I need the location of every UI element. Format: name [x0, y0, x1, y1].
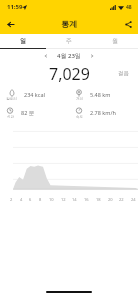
staticText: 걸음 [118, 70, 129, 77]
staticText: 통계 [61, 19, 77, 29]
staticText: 18 [96, 197, 101, 202]
staticText: 234 kcal [24, 91, 45, 98]
staticText: 칼로리 [6, 97, 17, 101]
button[interactable]: Share [118, 14, 138, 34]
staticText: 48 [126, 4, 132, 11]
staticText: 82 분 [21, 109, 35, 117]
staticText: 시간 [7, 115, 14, 119]
staticText: 6 [29, 197, 32, 202]
staticText: 24 [131, 197, 136, 202]
staticText: 16 [84, 197, 89, 202]
staticText: 14 [72, 197, 77, 202]
staticText: 12 [61, 197, 66, 202]
button[interactable]: 시간 [0, 105, 69, 120]
button[interactable]: 속도 [69, 105, 138, 120]
staticText: 2 [10, 197, 13, 202]
button[interactable]: 월 [92, 34, 138, 48]
staticText: 11:59 [7, 3, 23, 11]
staticText: 22 [119, 197, 124, 202]
staticText: 2.78 km/h [90, 109, 116, 116]
staticText: 4 [20, 197, 23, 202]
staticText: 20 [108, 197, 113, 202]
button[interactable]: Back [0, 14, 20, 34]
button[interactable]: 거리 [69, 87, 138, 102]
staticText: 10 [49, 197, 54, 202]
staticText: 월 [112, 37, 118, 45]
staticText: 거리 [76, 97, 83, 101]
button[interactable]: Next day [86, 50, 98, 62]
button[interactable]: Previous day [40, 50, 52, 62]
button[interactable]: 주 [46, 34, 92, 48]
staticText: 속도 [76, 115, 83, 119]
staticText: 주 [66, 37, 72, 45]
button[interactable]: 일 [0, 34, 46, 48]
staticText: 7,029 [49, 63, 90, 83]
button[interactable]: 칼로리 [0, 87, 69, 102]
staticText: 4월 23일 [57, 52, 81, 60]
staticText: 8 [39, 197, 42, 202]
staticText: 일 [20, 37, 26, 45]
staticText: 5.48 km [90, 91, 111, 98]
